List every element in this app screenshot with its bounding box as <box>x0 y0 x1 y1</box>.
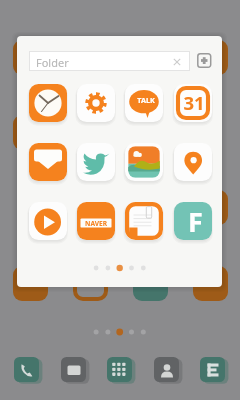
button[interactable]: Apps <box>107 357 136 385</box>
button[interactable]: App <box>13 115 48 150</box>
button[interactable]: Folder <box>29 51 190 71</box>
button[interactable]: App <box>73 266 108 301</box>
staticText: TALK <box>137 95 155 105</box>
button[interactable]: Photos <box>122 141 166 185</box>
staticText: NAVER <box>85 219 107 228</box>
button[interactable]: App <box>13 266 48 301</box>
button[interactable]: Talk <box>122 82 166 126</box>
button[interactable]: Memo <box>122 200 166 244</box>
button[interactable]: Video <box>26 200 70 244</box>
button[interactable]: Phone <box>14 357 43 385</box>
staticText: Folder <box>36 55 69 70</box>
button[interactable]: Naver <box>74 200 118 244</box>
button[interactable]: Contacts <box>154 357 183 385</box>
button[interactable]: Twitter <box>74 141 118 185</box>
staticText: 31 <box>183 90 205 115</box>
button[interactable]: Calendar <box>171 82 215 126</box>
button[interactable]: App <box>193 266 228 301</box>
button[interactable]: Clock <box>26 82 70 126</box>
button[interactable]: App <box>193 190 228 225</box>
button[interactable]: Maps <box>171 141 215 185</box>
button[interactable]: Messages <box>61 357 90 385</box>
button[interactable]: Add folder <box>197 53 212 68</box>
button[interactable]: Mail <box>26 141 70 185</box>
staticText: F <box>188 203 203 240</box>
button[interactable]: App <box>193 40 228 75</box>
button[interactable]: App <box>13 40 48 75</box>
button[interactable]: Facebook <box>171 200 215 244</box>
button[interactable]: App <box>133 266 168 301</box>
button[interactable]: Settings <box>74 82 118 126</box>
button[interactable]: Email <box>200 357 229 385</box>
